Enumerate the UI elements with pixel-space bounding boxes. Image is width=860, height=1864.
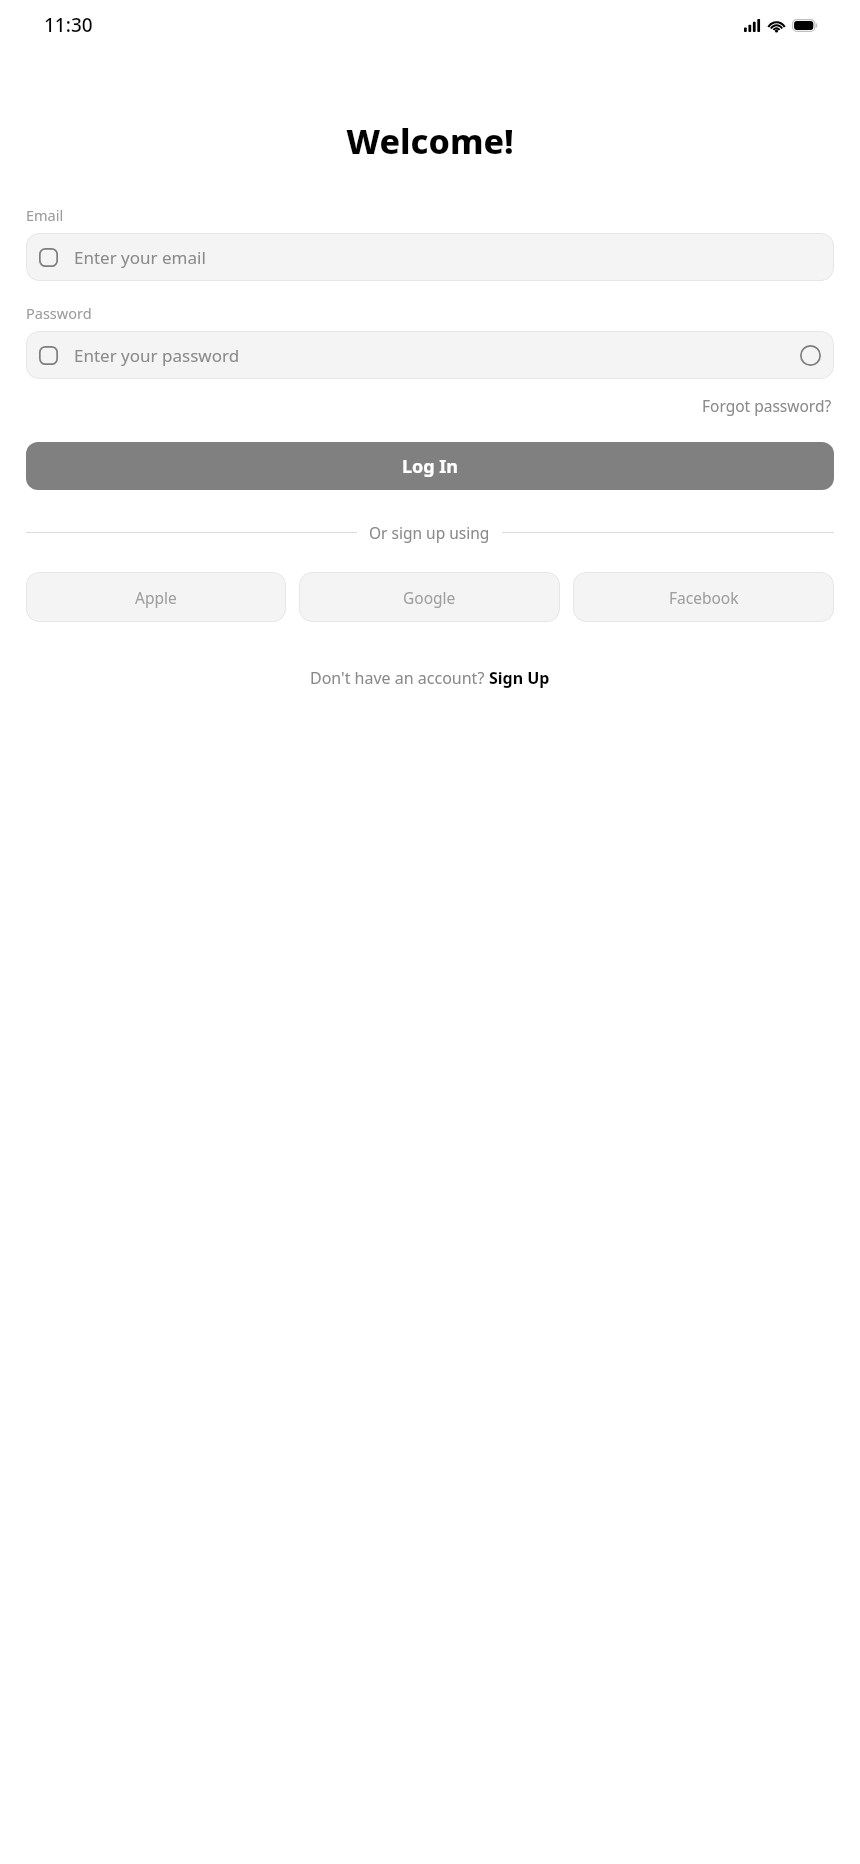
staticText: Enter your password	[74, 344, 800, 367]
staticText: Facebook	[669, 587, 739, 608]
staticText: Log In	[402, 454, 459, 479]
button[interactable]: Google	[299, 572, 560, 622]
other: Show password	[800, 345, 821, 366]
other: Field icon	[39, 346, 58, 365]
other: Field icon	[39, 248, 58, 267]
staticText: Apple	[135, 587, 177, 608]
button[interactable]: Log In	[26, 442, 834, 490]
button[interactable]: Facebook	[573, 572, 834, 622]
staticText: Email	[26, 205, 64, 225]
button[interactable]: Sign Up	[489, 667, 550, 689]
staticText: Don't have an account?	[310, 667, 489, 689]
staticText: Enter your email	[74, 246, 821, 269]
staticText: Password	[26, 303, 92, 323]
button[interactable]: Forgot password?	[700, 393, 834, 418]
staticText: Or sign up using	[369, 522, 490, 543]
staticText: Forgot password?	[702, 395, 832, 416]
staticText: 11:30	[44, 12, 93, 38]
staticText: Sign Up	[489, 667, 550, 689]
staticText: Google	[403, 587, 456, 608]
button[interactable]: Apple	[26, 572, 286, 622]
staticText: Welcome!	[26, 118, 834, 164]
button[interactable]: Field icon	[26, 233, 834, 281]
button[interactable]: Field icon	[26, 331, 834, 379]
